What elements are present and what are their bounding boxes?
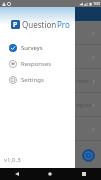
button[interactable]: Recents (67, 168, 101, 180)
staticText: Responses (21, 60, 52, 68)
button[interactable]: Back (0, 168, 33, 180)
staticText: Pro (57, 19, 70, 30)
button[interactable] (0, 21, 101, 45)
button[interactable]: Surveys (0, 42, 75, 54)
staticText: v1.0.3 (4, 156, 21, 164)
staticText: P (13, 20, 18, 29)
staticText: 100 (93, 1, 100, 6)
button[interactable]: Settings (0, 74, 75, 86)
button[interactable]: Create survey (82, 149, 95, 162)
staticText: signed (76, 102, 92, 109)
button[interactable]: signed (0, 93, 101, 117)
staticText: Question (22, 19, 57, 30)
button[interactable] (0, 117, 101, 141)
staticText: Settings (21, 76, 44, 84)
button[interactable]: Responses (0, 58, 75, 70)
staticText: ment | (76, 78, 93, 85)
button[interactable] (0, 45, 101, 69)
button[interactable]: ment | (0, 69, 101, 93)
staticText: Surveys (21, 44, 43, 52)
button[interactable]: Home (33, 168, 67, 180)
